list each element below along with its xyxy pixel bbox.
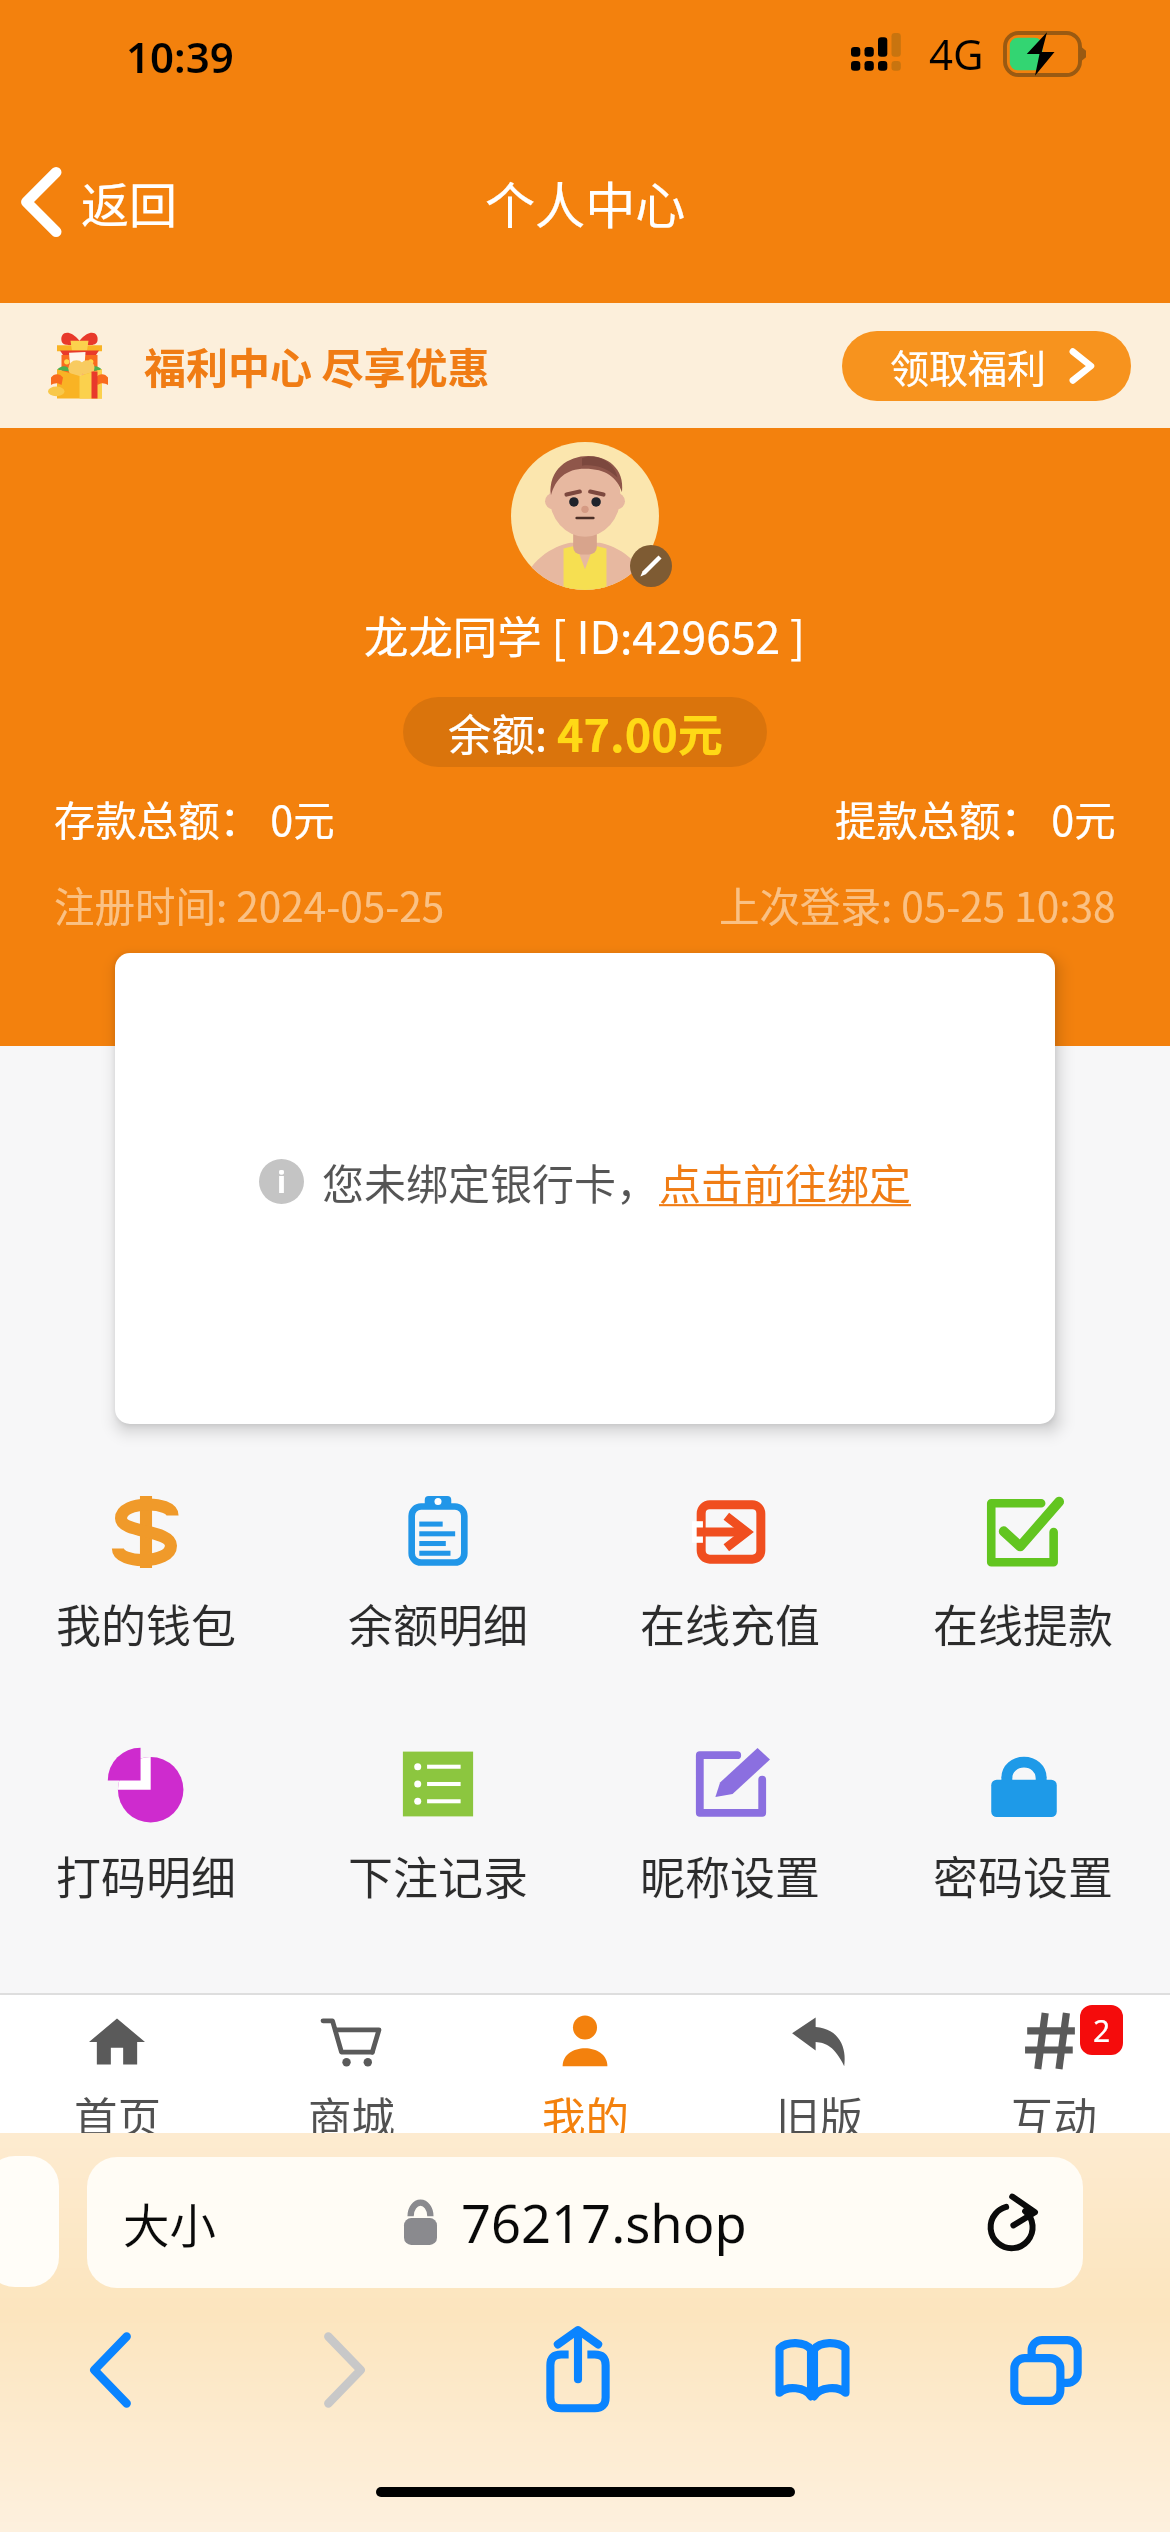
button[interactable]: 在线提款: [877, 1496, 1170, 1656]
button[interactable]: 2: [936, 1995, 1170, 2133]
button[interactable]: Share: [461, 2319, 695, 2421]
button[interactable]: 密码设置: [877, 1748, 1170, 1908]
staticText: 存款总额： 0元: [54, 788, 335, 848]
staticText: 旧版: [776, 2084, 863, 2133]
staticText: 注册时间: 2024-05-25: [54, 875, 445, 934]
staticText: 下注记录: [348, 1843, 529, 1908]
staticText: 领取福利: [890, 338, 1047, 394]
button[interactable]: 福利中心 尽享优惠: [42, 328, 490, 403]
staticText: 打码明细: [56, 1843, 237, 1908]
staticText: 个人中心: [485, 166, 686, 239]
button[interactable]: 余额:: [403, 697, 767, 767]
button[interactable]: 返回: [0, 143, 226, 261]
staticText: 首页: [74, 2084, 161, 2133]
button[interactable]: 我的: [468, 1995, 702, 2133]
staticText: 商城: [308, 2084, 395, 2133]
button[interactable]: Reload: [987, 2193, 1047, 2253]
staticText: 我的钱包: [56, 1591, 237, 1656]
staticText: i: [277, 1161, 286, 1202]
button[interactable]: 旧版: [702, 1995, 936, 2133]
staticText: 4G: [929, 25, 984, 82]
button[interactable]: 商城: [234, 1995, 468, 2133]
staticText: 提款总额： 0元: [835, 788, 1116, 848]
staticText: 龙龙同学 [ ID:429652 ]: [364, 602, 806, 666]
staticText: 返回: [81, 167, 178, 237]
staticText: 在线充值: [640, 1591, 821, 1656]
button[interactable]: 点击前往绑定: [659, 1151, 912, 1212]
button[interactable]: Forward: [227, 2319, 461, 2421]
staticText: 点击前往绑定: [659, 1151, 912, 1212]
button[interactable]: 下注记录: [292, 1748, 584, 1908]
button[interactable]: 余额明细: [292, 1496, 584, 1656]
staticText: 福利中心 尽享优惠: [144, 335, 490, 396]
button[interactable]: 我的钱包: [0, 1496, 292, 1656]
staticText: 10:39: [126, 28, 234, 85]
staticText: 在线提款: [933, 1591, 1114, 1656]
button[interactable]: 在线充值: [584, 1496, 877, 1656]
button[interactable]: 编辑头像: [630, 545, 672, 587]
button[interactable]: 大小: [87, 2157, 1083, 2288]
staticText: 您未绑定银行卡，: [322, 1151, 659, 1212]
staticText: 大小: [123, 2189, 216, 2256]
staticText: 2: [1093, 2010, 1111, 2051]
staticText: 我的: [542, 2084, 629, 2133]
staticText: 余额明细: [348, 1591, 529, 1656]
button[interactable]: Back: [0, 2319, 227, 2421]
staticText: 余额:: [448, 701, 557, 764]
button[interactable]: 领取福利: [842, 331, 1131, 401]
button[interactable]: Bookmarks: [695, 2319, 929, 2421]
staticText: 昵称设置: [640, 1843, 821, 1908]
button[interactable]: Tabs: [929, 2319, 1163, 2421]
staticText: 47.00元: [557, 700, 723, 765]
staticText: 密码设置: [933, 1843, 1114, 1908]
button[interactable]: 昵称设置: [584, 1748, 877, 1908]
staticText: 上次登录: 05-25 10:38: [719, 875, 1116, 934]
staticText: 76217.shop: [461, 2187, 747, 2259]
staticText: 互动: [1010, 2084, 1097, 2133]
button[interactable]: 首页: [0, 1995, 234, 2133]
button[interactable]: 打码明细: [0, 1748, 292, 1908]
